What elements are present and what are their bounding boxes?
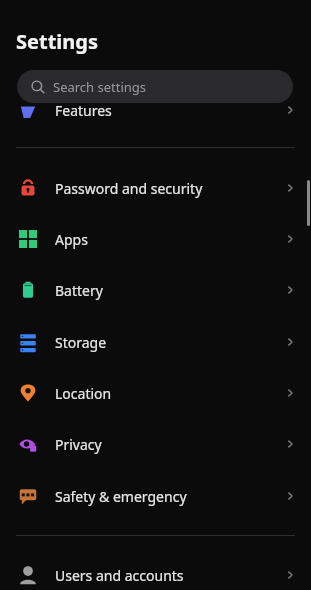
button[interactable]: Password and security	[0, 166, 311, 210]
staticText: Storage	[55, 333, 107, 352]
staticText: Apps	[55, 230, 88, 249]
staticText: Location	[55, 384, 112, 403]
button[interactable]: Location	[0, 371, 311, 415]
staticText: Settings	[16, 28, 98, 55]
button[interactable]: Safety & emergency	[0, 474, 311, 518]
button[interactable]: Storage	[0, 320, 311, 364]
button[interactable]: Users and accounts	[0, 553, 311, 590]
staticText: Features	[55, 101, 112, 120]
button[interactable]: Privacy	[0, 422, 311, 466]
staticText: Safety & emergency	[55, 487, 187, 506]
staticText: Password and security	[55, 179, 203, 198]
button[interactable]: Apps	[0, 217, 311, 261]
button[interactable]: Battery	[0, 268, 311, 312]
button[interactable]: Search settings	[17, 70, 293, 103]
staticText: Privacy	[55, 435, 102, 454]
staticText: Search settings	[53, 78, 147, 96]
button[interactable]: Features	[0, 96, 311, 124]
staticText: Users and accounts	[55, 566, 184, 585]
staticText: Battery	[55, 281, 103, 300]
